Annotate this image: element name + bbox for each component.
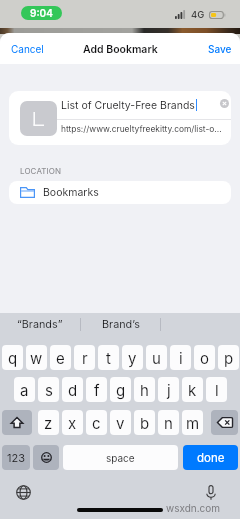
button[interactable]: w [26, 345, 47, 370]
button[interactable]: z [38, 410, 59, 435]
button[interactable]: b [134, 410, 155, 435]
staticText: p [224, 349, 234, 367]
button[interactable]: s [38, 377, 59, 402]
button[interactable]: x [62, 410, 83, 435]
button[interactable]: i [170, 345, 191, 370]
button[interactable]: a [14, 377, 35, 402]
staticText: k [188, 381, 197, 399]
staticText: t [106, 349, 111, 367]
button[interactable]: d [62, 377, 83, 402]
staticText: n [164, 414, 173, 432]
button[interactable]: done [183, 445, 238, 470]
button[interactable]: g [110, 377, 131, 402]
button[interactable]: Dictation [202, 483, 220, 501]
button[interactable]: r [74, 345, 95, 370]
staticText: h [140, 381, 149, 399]
staticText: Brand’s [102, 318, 140, 331]
button[interactable]: Emoji [33, 445, 59, 470]
button[interactable]: u [146, 345, 167, 370]
button[interactable]: Shift [2, 410, 32, 435]
button[interactable]: p [218, 345, 239, 370]
staticText: a [20, 381, 29, 399]
button[interactable]: Next keyboard [14, 483, 32, 501]
staticText: “Brands” [17, 318, 63, 331]
button[interactable]: o [194, 345, 215, 370]
button[interactable]: 123 [2, 445, 30, 470]
button[interactable]: Brand’s [81, 313, 160, 335]
button[interactable]: k [182, 377, 203, 402]
button[interactable]: “Brands” [0, 313, 80, 335]
button[interactable]: space [63, 445, 178, 470]
button[interactable]: q [2, 345, 23, 370]
button[interactable]: y [122, 345, 143, 370]
button[interactable]: t [98, 345, 119, 370]
staticText: d [68, 381, 78, 399]
staticText: i [179, 349, 183, 367]
staticText: done [197, 451, 225, 465]
staticText: l [215, 381, 219, 399]
button[interactable]: c [86, 410, 107, 435]
staticText: x [68, 414, 77, 432]
button[interactable]: n [158, 410, 179, 435]
button[interactable]: f [86, 377, 107, 402]
staticText: Add Bookmark [83, 43, 158, 56]
staticText: Cancel [11, 43, 44, 55]
staticText: 9:04 [30, 7, 53, 19]
button[interactable]: Clear text [214, 93, 231, 113]
button[interactable]: l [206, 377, 227, 402]
staticText: y [128, 349, 137, 367]
staticText: w [30, 349, 43, 367]
button[interactable]: Cancel [0, 33, 52, 64]
staticText: https://www.crueltyfreekitty.com/list-o.… [61, 124, 222, 134]
staticText: m [186, 414, 200, 432]
staticText: v [116, 414, 125, 432]
staticText: List of Cruelty-Free Brands [61, 99, 195, 112]
button[interactable]: m [182, 410, 203, 435]
staticText: r [82, 349, 88, 367]
staticText: 123 [7, 451, 25, 464]
staticText: space [106, 452, 135, 464]
staticText: o [200, 349, 209, 367]
staticText: Save [208, 43, 232, 55]
staticText: LOCATION [20, 166, 62, 176]
staticText: Bookmarks [43, 186, 99, 199]
staticText: j [167, 381, 171, 399]
button[interactable]: e [50, 345, 71, 370]
staticText: wsxdn.com [166, 502, 221, 514]
button[interactable]: h [134, 377, 155, 402]
button[interactable]: Bookmarks [9, 181, 231, 204]
staticText: c [92, 414, 101, 432]
button[interactable]: j [158, 377, 179, 402]
staticText: b [140, 414, 150, 432]
staticText: 4G [191, 9, 205, 20]
staticText: q [8, 349, 18, 367]
button[interactable]: v [110, 410, 131, 435]
staticText: e [56, 349, 65, 367]
staticText: u [152, 349, 161, 367]
button[interactable]: Backspace [211, 410, 238, 435]
staticText: f [94, 381, 100, 399]
staticText: s [45, 381, 53, 399]
staticText: z [44, 414, 53, 432]
staticText: g [116, 381, 126, 399]
button[interactable]: Save [200, 33, 240, 64]
